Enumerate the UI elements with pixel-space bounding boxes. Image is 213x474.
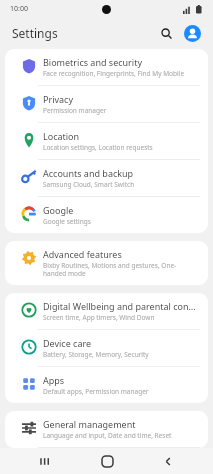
- button[interactable]: Device care: [5, 330, 208, 367]
- staticText: Digital Wellbeing and parental controls: [43, 300, 198, 312]
- staticText: Language and input, Date and time, Reset: [43, 431, 172, 440]
- staticText: 10:00: [10, 4, 28, 14]
- button[interactable]: Back: [151, 448, 185, 474]
- staticText: Location settings, Location requests: [43, 143, 153, 152]
- button[interactable]: Advanced features: [5, 241, 208, 285]
- button[interactable]: Biometrics and security: [5, 49, 208, 86]
- staticText: Privacy: [43, 93, 74, 105]
- staticText: Screen time, App timers, Wind Down: [43, 313, 155, 322]
- staticText: Settings: [12, 25, 58, 41]
- staticText: Samsung Cloud, Smart Switch: [43, 180, 135, 189]
- staticText: Apps: [43, 374, 65, 386]
- staticText: Advanced features: [43, 248, 122, 260]
- button[interactable]: Apps: [5, 367, 208, 403]
- staticText: Google settings: [43, 217, 91, 226]
- staticText: Accounts and backup: [43, 167, 134, 179]
- staticText: Default apps, Permission manager: [43, 387, 149, 396]
- staticText: General management: [43, 418, 136, 430]
- staticText: Biometrics and security: [43, 56, 143, 68]
- button[interactable]: Search: [155, 22, 177, 44]
- staticText: Location: [43, 130, 80, 142]
- button[interactable]: Google: [5, 197, 208, 233]
- button[interactable]: Home: [90, 448, 124, 474]
- staticText: Battery, Storage, Memory, Security: [43, 350, 149, 359]
- button[interactable]: Privacy: [5, 86, 208, 123]
- button[interactable]: Digital Wellbeing and parental controls: [5, 293, 208, 330]
- button[interactable]: General management: [5, 411, 208, 448]
- staticText: Bixby Routines, Motions and gestures, On…: [43, 261, 198, 278]
- staticText: Device care: [43, 337, 92, 349]
- button[interactable]: Accounts and backup: [5, 160, 208, 197]
- button[interactable]: Location: [5, 123, 208, 160]
- staticText: Google: [43, 204, 74, 216]
- button[interactable]: Recent apps: [28, 448, 62, 474]
- staticText: Permission manager: [43, 106, 107, 115]
- button[interactable]: Account: [181, 22, 203, 44]
- staticText: Face recognition, Fingerprints, Find My …: [43, 69, 185, 78]
